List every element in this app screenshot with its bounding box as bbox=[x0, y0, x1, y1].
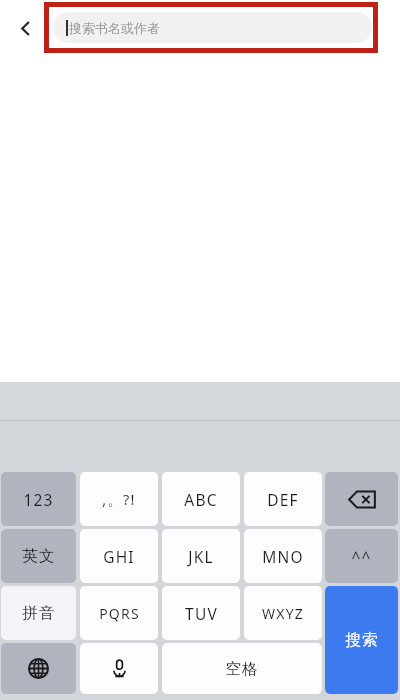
staticText: 123 bbox=[23, 489, 54, 510]
button[interactable]: DEF bbox=[244, 472, 322, 526]
staticText: MNO bbox=[262, 546, 304, 567]
button[interactable]: WXYZ bbox=[244, 586, 322, 640]
button[interactable]: MNO bbox=[244, 529, 322, 583]
staticText: 英文 bbox=[22, 546, 56, 566]
button[interactable]: ^^ bbox=[325, 529, 398, 583]
staticText: JKL bbox=[188, 546, 214, 567]
staticText: 空格 bbox=[225, 659, 259, 679]
staticText: ^^ bbox=[351, 546, 372, 567]
button[interactable]: PQRS bbox=[80, 586, 158, 640]
button[interactable]: 空格 bbox=[162, 643, 322, 694]
button[interactable]: Voice input bbox=[80, 643, 158, 694]
staticText: 拼音 bbox=[22, 603, 56, 623]
button[interactable]: Delete bbox=[325, 472, 398, 526]
staticText: WXYZ bbox=[262, 604, 304, 623]
button[interactable]: Back bbox=[8, 11, 42, 45]
staticText: DEF bbox=[267, 489, 299, 510]
button[interactable]: GHI bbox=[80, 529, 158, 583]
button[interactable]: Switch keyboard bbox=[1, 643, 76, 694]
button[interactable]: ABC bbox=[162, 472, 240, 526]
button[interactable]: JKL bbox=[162, 529, 240, 583]
button[interactable]: ,。?! bbox=[80, 472, 158, 526]
button[interactable]: 英文 bbox=[1, 529, 76, 583]
staticText: PQRS bbox=[99, 604, 140, 623]
staticText: 搜索书名或作者 bbox=[69, 20, 160, 36]
button[interactable]: TUV bbox=[162, 586, 240, 640]
staticText: ,。?! bbox=[102, 489, 136, 509]
button[interactable]: 搜索书名或作者 bbox=[53, 12, 372, 43]
button[interactable]: 123 bbox=[1, 472, 76, 526]
staticText: TUV bbox=[185, 603, 218, 624]
staticText: 搜索 bbox=[345, 630, 379, 650]
button[interactable]: 拼音 bbox=[1, 586, 76, 640]
staticText: GHI bbox=[103, 546, 135, 567]
staticText: ABC bbox=[184, 489, 218, 510]
button[interactable]: 搜索 bbox=[325, 586, 398, 694]
